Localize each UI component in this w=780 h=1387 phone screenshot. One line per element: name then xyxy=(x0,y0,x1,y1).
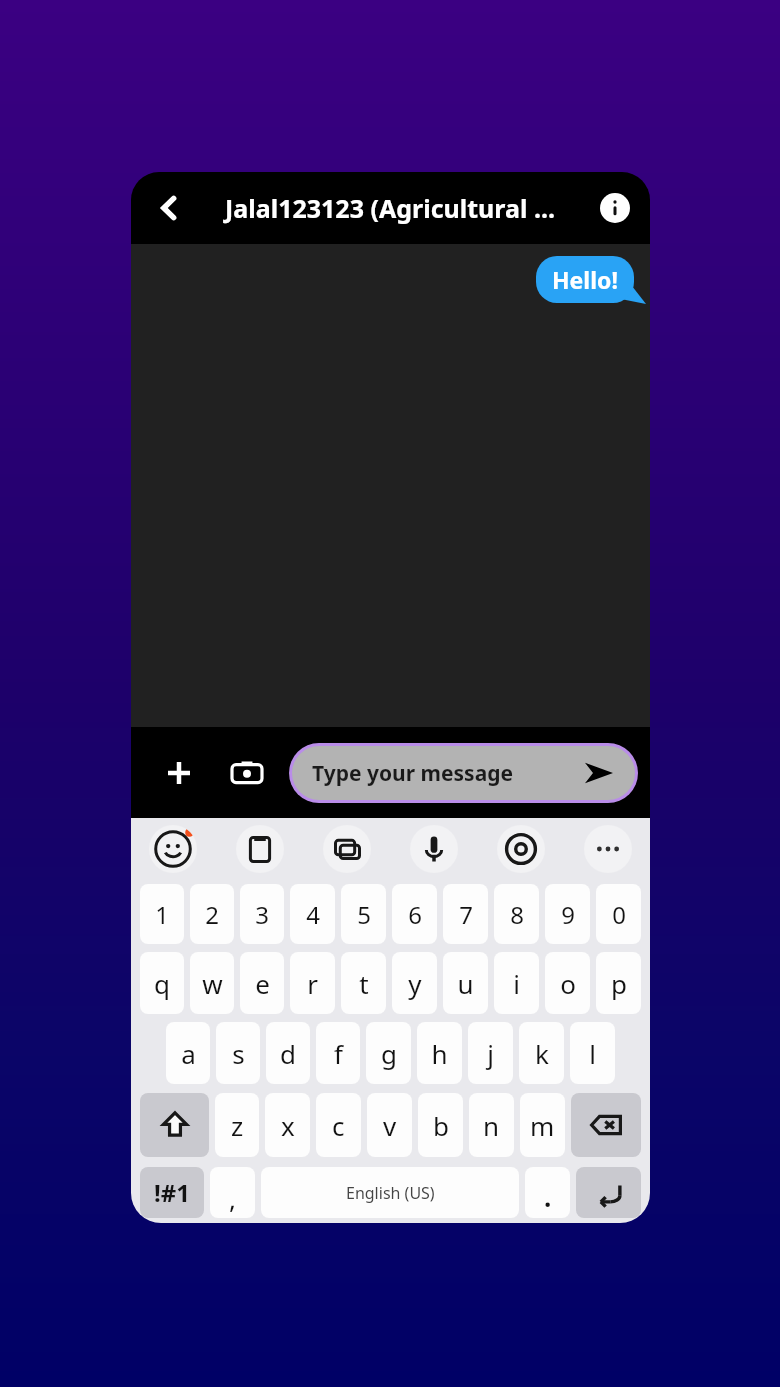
button[interactable]: v xyxy=(367,1093,412,1157)
staticText: 8 xyxy=(510,898,524,931)
staticText: w xyxy=(202,966,223,1001)
button[interactable]: i xyxy=(494,952,539,1014)
button[interactable]: Shift xyxy=(140,1093,209,1157)
button[interactable]: 7 xyxy=(443,884,488,944)
button[interactable]: l xyxy=(570,1022,615,1084)
staticText: g xyxy=(381,1036,397,1071)
staticText: Type your message xyxy=(312,759,514,788)
staticText: l xyxy=(589,1036,596,1071)
staticText: k xyxy=(535,1036,549,1071)
button[interactable]: 2 xyxy=(190,884,234,944)
staticText: . xyxy=(544,1179,552,1214)
button[interactable]: Conversation info xyxy=(592,185,638,231)
staticText: o xyxy=(560,966,576,1001)
button[interactable]: h xyxy=(417,1022,462,1084)
button[interactable]: English (US) xyxy=(261,1167,519,1218)
staticText: Hello! xyxy=(552,264,618,295)
staticText: 6 xyxy=(408,898,422,931)
staticText: s xyxy=(232,1036,245,1071)
button[interactable]: Voice input xyxy=(410,825,458,873)
button[interactable]: b xyxy=(418,1093,463,1157)
staticText: n xyxy=(483,1108,500,1143)
staticText: 4 xyxy=(306,898,320,931)
button[interactable]: . xyxy=(525,1167,570,1218)
button[interactable]: n xyxy=(469,1093,514,1157)
button[interactable]: q xyxy=(140,952,184,1014)
button[interactable]: 1 xyxy=(140,884,184,944)
staticText: a xyxy=(181,1036,196,1071)
button[interactable]: w xyxy=(190,952,234,1014)
staticText: b xyxy=(433,1108,449,1143)
button[interactable]: 9 xyxy=(545,884,590,944)
button[interactable]: Camera xyxy=(221,747,273,799)
staticText: 9 xyxy=(561,898,575,931)
button[interactable]: , xyxy=(210,1167,255,1218)
button[interactable]: c xyxy=(316,1093,361,1157)
staticText: 2 xyxy=(205,898,219,931)
button[interactable]: p xyxy=(596,952,641,1014)
staticText: u xyxy=(457,966,474,1001)
button[interactable]: z xyxy=(215,1093,259,1157)
staticText: r xyxy=(307,966,318,1001)
button[interactable]: 0 xyxy=(596,884,641,944)
button[interactable]: Send xyxy=(577,751,621,795)
button[interactable]: Clipboard xyxy=(236,825,284,873)
staticText: p xyxy=(611,966,627,1001)
staticText: d xyxy=(280,1036,296,1071)
button[interactable]: Stickers xyxy=(323,825,371,873)
staticText: m xyxy=(530,1108,555,1143)
staticText: y xyxy=(408,966,422,1001)
button[interactable]: Type your message xyxy=(292,746,635,800)
button[interactable]: d xyxy=(266,1022,310,1084)
button[interactable]: u xyxy=(443,952,488,1014)
staticText: 7 xyxy=(459,898,473,931)
button[interactable]: y xyxy=(392,952,437,1014)
button[interactable]: f xyxy=(316,1022,360,1084)
staticText: e xyxy=(255,966,270,1001)
staticText: i xyxy=(513,966,520,1001)
button[interactable]: e xyxy=(240,952,284,1014)
staticText: !#1 xyxy=(154,1176,190,1209)
button[interactable]: k xyxy=(519,1022,564,1084)
staticText: 3 xyxy=(255,898,269,931)
button[interactable]: j xyxy=(468,1022,513,1084)
staticText: h xyxy=(431,1036,448,1071)
staticText: x xyxy=(281,1108,295,1143)
button[interactable]: More options xyxy=(584,825,632,873)
staticText: t xyxy=(359,966,369,1001)
staticText: , xyxy=(229,1181,236,1216)
button[interactable]: Add attachment xyxy=(153,747,205,799)
staticText: q xyxy=(154,966,170,1001)
button[interactable]: s xyxy=(216,1022,260,1084)
button[interactable]: 8 xyxy=(494,884,539,944)
button[interactable]: 4 xyxy=(290,884,335,944)
button[interactable]: g xyxy=(366,1022,411,1084)
button[interactable]: Settings xyxy=(497,825,545,873)
button[interactable]: Emoji xyxy=(149,825,197,873)
button[interactable]: Backspace xyxy=(571,1093,641,1157)
button[interactable]: 5 xyxy=(341,884,386,944)
staticText: 0 xyxy=(612,898,626,931)
button[interactable]: 6 xyxy=(392,884,437,944)
staticText: English (US) xyxy=(346,1182,435,1204)
button[interactable]: r xyxy=(290,952,335,1014)
button[interactable]: 3 xyxy=(240,884,284,944)
staticText: f xyxy=(334,1036,343,1071)
staticText: Jalal123123 (Agricultural ... xyxy=(225,191,556,225)
button[interactable]: Back xyxy=(145,184,193,232)
staticText: 5 xyxy=(357,898,371,931)
staticText: z xyxy=(231,1108,244,1143)
button[interactable]: a xyxy=(166,1022,210,1084)
button[interactable]: !#1 xyxy=(140,1167,204,1218)
staticText: 1 xyxy=(155,898,169,931)
button[interactable]: Enter xyxy=(576,1167,641,1218)
staticText: j xyxy=(487,1036,494,1071)
button[interactable]: t xyxy=(341,952,386,1014)
button[interactable]: Hello! xyxy=(536,256,634,303)
staticText: v xyxy=(383,1108,397,1143)
button[interactable]: m xyxy=(520,1093,565,1157)
staticText: c xyxy=(332,1108,345,1143)
button[interactable]: x xyxy=(265,1093,310,1157)
button[interactable]: o xyxy=(545,952,590,1014)
